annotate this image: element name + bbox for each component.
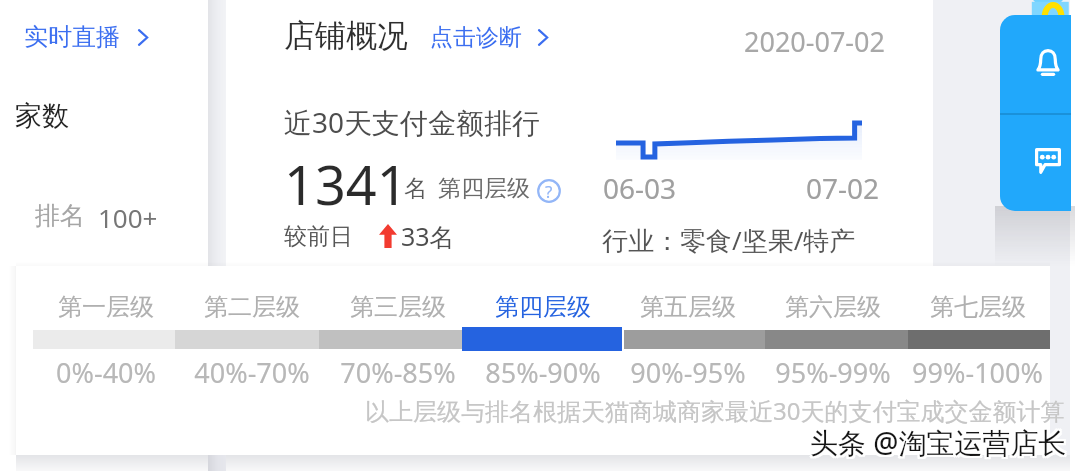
staticText: 99%-100% (912, 354, 1043, 391)
staticText: 第四层级 (438, 174, 530, 203)
staticText: 头条 @淘宝运营店长 (812, 421, 1069, 459)
button[interactable]: 第七层级 (905, 292, 1050, 322)
button[interactable]: 第一层级 (33, 292, 179, 322)
button[interactable]: 实时直播 (24, 22, 151, 52)
staticText: 90%-95% (630, 354, 746, 391)
staticText: 行业：零食/坚果/特产 (602, 222, 856, 258)
staticText: 家数 (15, 99, 69, 133)
staticText: 头条 @淘宝运营店长 (808, 423, 1065, 461)
staticText: 头条 @淘宝运营店长 (808, 425, 1065, 463)
staticText: 33名 (401, 219, 455, 253)
staticText: 以上层级与排名根据天猫商城商家最近30天的支付宝成交金额计算 (365, 394, 1065, 427)
button[interactable]: 第六层级 (760, 292, 905, 322)
button[interactable]: 帮助说明 (537, 179, 561, 203)
staticText: 40%-70% (194, 354, 310, 391)
staticText: 2020-07-02 (744, 23, 885, 60)
staticText: 头条 @淘宝运营店长 (810, 423, 1067, 461)
staticText: 85%-90% (485, 354, 601, 391)
staticText: 95%-99% (775, 354, 891, 391)
staticText: 头条 @淘宝运营店长 (810, 425, 1067, 463)
staticText: 近30天支付金额排行 (284, 103, 541, 141)
staticText: 头条 @淘宝运营店长 (812, 423, 1069, 461)
button[interactable]: 消息 (1000, 115, 1071, 211)
staticText: 头条 @淘宝运营店长 (812, 425, 1069, 463)
button[interactable]: 第三层级 (325, 292, 470, 322)
staticText: 较前日 (284, 222, 353, 251)
button[interactable]: 第四层级 (470, 292, 615, 322)
staticText: 第七层级 (930, 292, 1026, 322)
staticText: 100+ (98, 200, 158, 235)
staticText: 第一层级 (58, 292, 154, 322)
staticText: 头条 @淘宝运营店长 (808, 421, 1065, 459)
staticText: 第四层级 (495, 292, 591, 322)
button[interactable]: 点击诊断 (430, 23, 551, 52)
button[interactable]: 第五层级 (615, 292, 760, 322)
staticText: 点击诊断 (430, 23, 522, 52)
button[interactable]: 第二层级 (179, 292, 325, 322)
staticText: ? (545, 180, 553, 203)
staticText: 06-03 (603, 169, 677, 207)
button[interactable]: 通知 (1000, 15, 1071, 113)
staticText: 名 (404, 174, 427, 203)
staticText: 头条 @淘宝运营店长 (810, 421, 1067, 459)
staticText: 70%-85% (340, 354, 456, 391)
staticText: 实时直播 (24, 22, 120, 52)
staticText: 排名 (35, 200, 85, 231)
staticText: 07-02 (806, 169, 880, 207)
staticText: 1341 (284, 147, 408, 221)
staticText: 0%-40% (56, 354, 156, 391)
staticText: 第二层级 (204, 292, 300, 322)
staticText: 店铺概况 (284, 16, 408, 55)
staticText: 第五层级 (640, 292, 736, 322)
staticText: 第三层级 (350, 292, 446, 322)
staticText: 第六层级 (785, 292, 881, 322)
